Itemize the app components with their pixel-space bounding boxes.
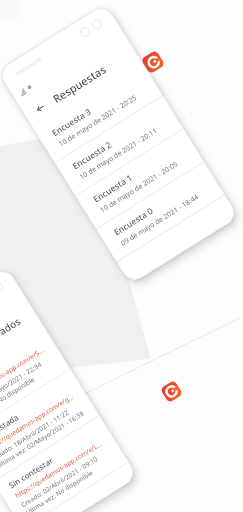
staticText: Respuestas <box>50 62 109 106</box>
staticText: Encuesta 2 <box>70 139 114 172</box>
staticText: 10 de mayo de 2021 - 20:05 <box>98 159 180 215</box>
other: Back <box>33 100 48 116</box>
staticText: Sin contestar <box>6 454 56 491</box>
button[interactable]: More options <box>169 88 173 93</box>
staticText: Encuesta 1 <box>91 172 135 205</box>
staticText: Encuesta 0 <box>112 205 155 238</box>
staticText: 10 de mayo de 2021 - 20:11 <box>78 126 159 182</box>
button[interactable]: Back <box>30 98 51 118</box>
button[interactable]: Encuesta 1 <box>75 129 204 229</box>
button[interactable]: Contestada <box>0 369 99 482</box>
button[interactable]: Sin contestar <box>0 416 129 512</box>
button[interactable]: More options <box>189 113 193 118</box>
staticText: Encuesta 3 <box>50 106 93 139</box>
staticText: Creado: 17/Mayo/2021 - 22:34 <box>0 359 44 416</box>
staticText: https://quedamos-app.com/e/Sjhgk5Fx <box>0 345 46 407</box>
staticText: https://quedamos-app.com/e/Lm0p9Qa2 <box>13 438 105 500</box>
button[interactable]: Encuesta 3 <box>34 63 163 163</box>
staticText: Contestada <box>0 411 20 444</box>
staticText: Última vez: No disponible <box>0 375 37 424</box>
staticText: Creado: 18/Abril/2021 - 11:22 <box>0 408 70 463</box>
button[interactable]: Sin contestar <box>0 322 70 435</box>
staticText: Creado: 02/Abril/2021 - 09:10 <box>19 454 99 509</box>
staticText: 10 de mayo de 2021 - 20:25 <box>57 93 139 149</box>
staticText: Última vez: No disponible <box>24 468 95 512</box>
other: App notification <box>141 50 165 74</box>
button[interactable]: Encuesta 2 <box>55 96 183 196</box>
staticText: Links generados <box>0 314 24 367</box>
staticText: https://quedamos-app.com/e/gam14Gaz <box>0 391 75 453</box>
staticText: 09 de mayo de 2021 - 18:44 <box>119 192 201 248</box>
button[interactable]: Encuesta 0 <box>96 162 225 262</box>
staticText: Última vez: 02/Mayo/2021 - 16:38 <box>0 408 86 470</box>
other: App notification <box>160 380 183 403</box>
